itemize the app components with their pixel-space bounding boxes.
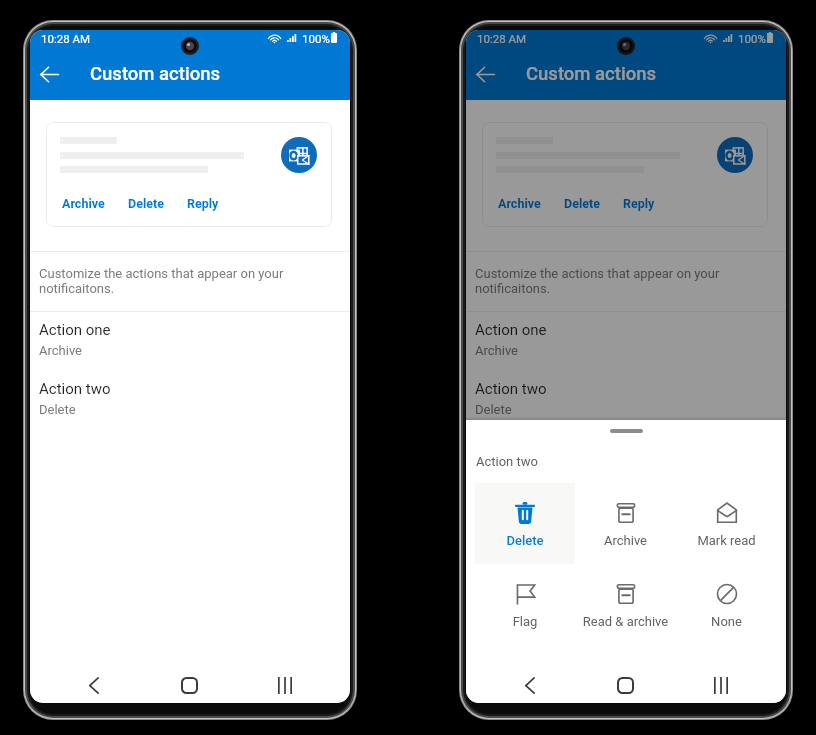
staticText: Action two bbox=[475, 380, 547, 398]
button[interactable]: Home bbox=[169, 664, 210, 703]
staticText: Archive bbox=[498, 196, 541, 211]
staticText: Archive bbox=[575, 533, 676, 548]
button[interactable]: Archive bbox=[482, 122, 768, 227]
staticText: 10:28 AM bbox=[477, 32, 527, 45]
staticText: Custom actions bbox=[526, 63, 657, 85]
staticText: Delete bbox=[564, 196, 600, 211]
button[interactable]: Back bbox=[73, 664, 114, 703]
button[interactable]: Recent apps bbox=[264, 664, 305, 703]
staticText: Action two bbox=[476, 454, 538, 469]
staticText: Read & archive bbox=[575, 614, 676, 629]
button[interactable]: Reply bbox=[187, 196, 219, 211]
button[interactable]: Flag bbox=[475, 564, 575, 645]
staticText: Mark read bbox=[676, 533, 777, 548]
button[interactable]: Mark read bbox=[676, 483, 777, 564]
staticText: Delete bbox=[475, 533, 575, 548]
button[interactable]: Delete bbox=[564, 196, 600, 211]
staticText: Archive bbox=[39, 343, 82, 358]
staticText: Action one bbox=[475, 321, 547, 339]
button[interactable]: Read & archive bbox=[575, 564, 676, 645]
button[interactable]: Back bbox=[509, 664, 550, 703]
button[interactable]: Reply bbox=[623, 196, 655, 211]
button[interactable]: Action one bbox=[30, 312, 350, 371]
staticText: None bbox=[676, 614, 777, 629]
staticText: Customize the actions that appear on you… bbox=[475, 266, 727, 296]
button[interactable]: Action two bbox=[466, 371, 786, 430]
button[interactable]: Delete bbox=[475, 483, 575, 564]
staticText: 100% bbox=[302, 32, 330, 45]
staticText: Delete bbox=[128, 196, 164, 211]
staticText: Archive bbox=[62, 196, 105, 211]
button[interactable]: Archive bbox=[62, 196, 105, 211]
staticText: Delete bbox=[39, 402, 76, 417]
button[interactable]: Action two bbox=[30, 371, 350, 430]
button[interactable]: Home bbox=[605, 664, 646, 703]
staticText: Action one bbox=[39, 321, 111, 339]
button[interactable]: Recent apps bbox=[700, 664, 741, 703]
staticText: Archive bbox=[475, 343, 518, 358]
button[interactable]: Back bbox=[33, 58, 65, 90]
button[interactable]: Delete bbox=[128, 196, 164, 211]
staticText: Customize the actions that appear on you… bbox=[39, 266, 291, 296]
staticText: Action two bbox=[39, 380, 111, 398]
button[interactable]: None bbox=[676, 564, 777, 645]
staticText: Reply bbox=[187, 196, 219, 211]
button[interactable]: Archive bbox=[46, 122, 332, 227]
staticText: 10:28 AM bbox=[41, 32, 91, 45]
staticText: Flag bbox=[475, 614, 575, 629]
staticText: Custom actions bbox=[90, 63, 221, 85]
button[interactable]: Back bbox=[509, 664, 550, 703]
staticText: 100% bbox=[738, 32, 766, 45]
staticText: Delete bbox=[475, 402, 512, 417]
button[interactable]: Home bbox=[605, 664, 646, 703]
button[interactable]: Archive bbox=[498, 196, 541, 211]
button[interactable]: Action one bbox=[466, 312, 786, 371]
button[interactable]: Archive bbox=[575, 483, 676, 564]
button[interactable]: Back bbox=[469, 58, 501, 90]
staticText: Reply bbox=[623, 196, 655, 211]
button[interactable]: Recent apps bbox=[700, 664, 741, 703]
